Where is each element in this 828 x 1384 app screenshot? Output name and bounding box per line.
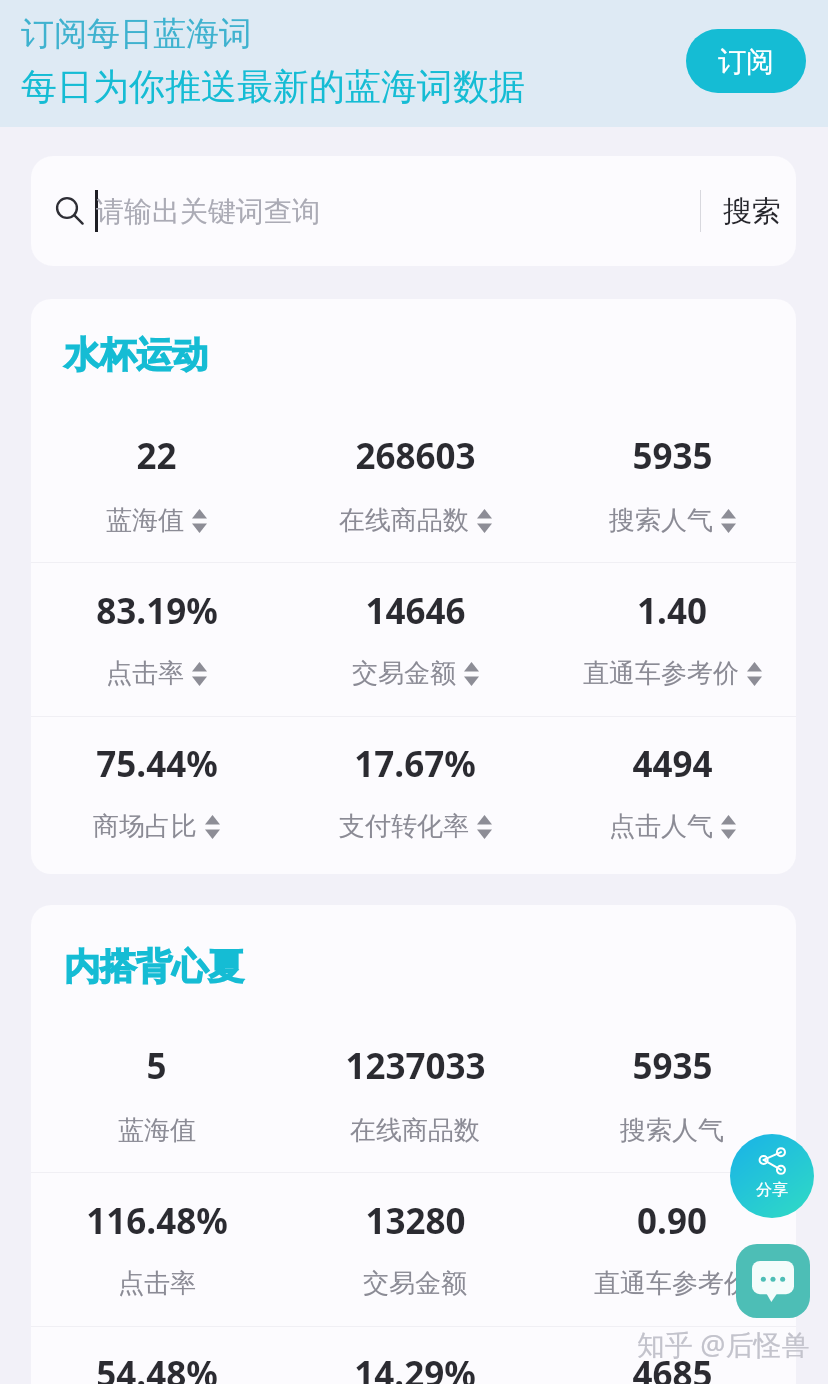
other: 排序 [192,662,207,686]
staticText: 分享 [756,1180,788,1200]
staticText: 蓝海值 [106,504,184,537]
staticText: 5935 [632,1042,713,1090]
other: 排序 [721,509,736,533]
button[interactable]: 客服 [736,1244,810,1318]
staticText: 水杯运动 [64,332,208,377]
staticText: 14.29% [354,1350,476,1384]
staticText: 14646 [365,587,466,635]
staticText: 点击率 [118,1267,196,1300]
staticText: 54.48% [96,1350,218,1384]
button[interactable] [282,1183,548,1321]
staticText: 在线商品数 [339,504,469,537]
other: 排序 [477,815,492,839]
staticText: 知乎 @后怪兽 [637,1325,810,1363]
button[interactable] [548,1028,796,1168]
other: 排序 [205,815,220,839]
staticText: 商场占比 [93,810,197,843]
button[interactable] [282,418,548,558]
staticText: 请输出关键词查询 [96,194,320,229]
staticText: 83.19% [96,587,218,635]
staticText: 订阅 [718,44,774,79]
button[interactable] [282,726,548,865]
staticText: 搜索 [723,193,781,230]
staticText: 22 [136,432,177,480]
other: 排序 [477,509,492,533]
button[interactable] [282,1028,548,1168]
staticText: 在线商品数 [350,1114,480,1147]
other: 排序 [192,509,207,533]
button[interactable] [31,1336,282,1384]
button[interactable] [31,418,282,558]
button[interactable] [282,1336,548,1384]
staticText: 0.90 [637,1197,707,1245]
button[interactable]: 搜索 [701,156,796,266]
staticText: 4685 [632,1350,713,1384]
other: 排序 [464,662,479,686]
button[interactable] [548,418,796,558]
staticText: 订阅每日蓝海词 [21,13,252,55]
button[interactable] [31,573,282,711]
staticText: 点击人气 [609,810,713,843]
staticText: 交易金额 [363,1267,467,1300]
staticText: 搜索人气 [620,1114,724,1147]
button[interactable] [548,573,796,711]
staticText: 直通车参考价 [594,1267,750,1300]
button[interactable] [31,726,282,865]
button[interactable]: 分享 [730,1134,814,1218]
staticText: 内搭背心夏 [64,944,244,989]
button[interactable]: 搜索图标 [31,156,796,266]
other: 排序 [721,815,736,839]
button[interactable] [548,1183,796,1321]
staticText: 75.44% [96,740,218,788]
button[interactable] [548,1336,796,1384]
staticText: 支付转化率 [339,810,469,843]
staticText: 1237033 [345,1042,486,1090]
button[interactable] [31,1183,282,1321]
button[interactable] [31,1028,282,1168]
staticText: 4494 [632,740,713,788]
staticText: 每日为你推送最新的蓝海词数据 [21,64,525,109]
staticText: 268603 [355,432,476,480]
other: 排序 [747,662,762,686]
button[interactable] [282,573,548,711]
staticText: 点击率 [106,657,184,690]
button[interactable] [548,726,796,865]
staticText: 1.40 [637,587,707,635]
other: 搜索图标 [55,196,85,226]
staticText: 17.67% [354,740,476,788]
staticText: 5935 [632,432,713,480]
staticText: 13280 [365,1197,466,1245]
staticText: 116.48% [86,1197,228,1245]
staticText: 蓝海值 [118,1114,196,1147]
staticText: 交易金额 [352,657,456,690]
staticText: 直通车参考价 [583,657,739,690]
staticText: 5 [146,1042,167,1090]
button[interactable]: 订阅 [686,29,806,93]
staticText: 搜索人气 [609,504,713,537]
